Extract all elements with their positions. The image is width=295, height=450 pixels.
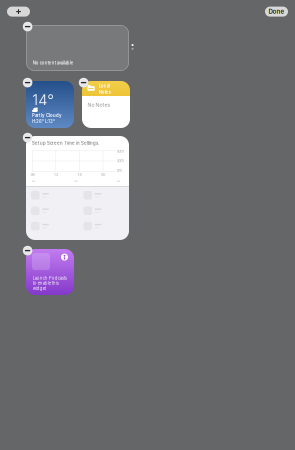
button[interactable]: Set up Screen Time in Settings. — [26, 136, 129, 240]
staticText: No content available — [33, 60, 74, 65]
staticText: 30m — [116, 159, 123, 163]
staticText: Partly Cloudy — [32, 113, 62, 118]
button[interactable]: Remove widget — [23, 133, 32, 142]
staticText: 18 — [77, 172, 81, 177]
button[interactable]: No content available — [26, 25, 129, 71]
button[interactable]: Local — [82, 81, 130, 128]
staticText: 14° — [32, 91, 54, 109]
button[interactable]: Remove widget — [23, 22, 32, 31]
button[interactable]: Launch Podcasts to enable this widget — [26, 249, 74, 295]
staticText: 0m — [116, 168, 121, 173]
staticText: Set up Screen Time in Settings. — [32, 141, 99, 146]
staticText: Launch Podcasts to enable this widget — [33, 275, 67, 291]
staticText: 60m — [116, 149, 123, 154]
staticText: 06 — [30, 172, 34, 177]
button[interactable]: 14° — [26, 81, 74, 128]
staticText: Notes — [99, 90, 111, 95]
button[interactable]: Done — [265, 7, 288, 17]
staticText: No Notes — [87, 102, 110, 108]
staticText: H:26° L:13° — [32, 119, 55, 124]
staticText: 12 — [54, 172, 58, 177]
button[interactable]: Remove widget — [23, 246, 32, 255]
button[interactable]: Add widget — [7, 7, 30, 17]
staticText: Done — [268, 8, 284, 15]
staticText: Local — [99, 83, 110, 88]
staticText: 00 — [101, 172, 105, 177]
button[interactable]: Remove widget — [79, 78, 88, 87]
button[interactable]: Remove widget — [23, 78, 32, 87]
